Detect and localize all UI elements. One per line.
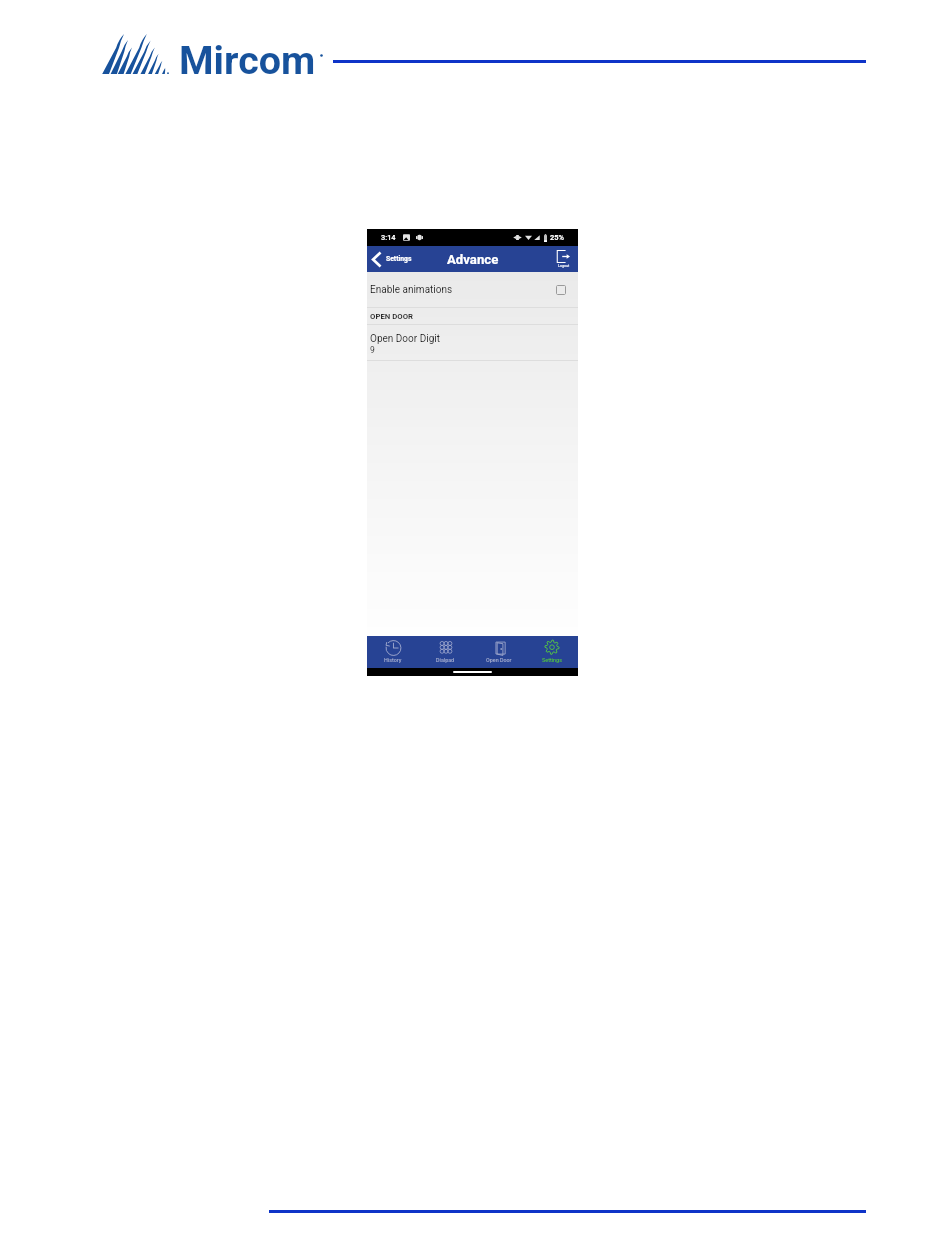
button[interactable]: Open Door Digit: [367, 325, 578, 360]
button[interactable]: Logout: [551, 246, 578, 272]
staticText: Settings: [386, 255, 412, 263]
staticText: Settings: [542, 657, 562, 663]
button[interactable]: History: [367, 636, 419, 668]
staticText: 3:14: [381, 233, 396, 242]
staticText: Mircom: [179, 37, 316, 81]
staticText: Advance: [447, 252, 499, 267]
button[interactable]: Dialpad: [419, 636, 472, 668]
staticText: 25%: [550, 233, 564, 242]
button[interactable]: Settings: [525, 636, 578, 668]
staticText: History: [384, 657, 402, 663]
button[interactable]: Open Door: [472, 636, 525, 668]
staticText: Enable animations: [370, 284, 453, 296]
staticText: OPEN DOOR: [370, 312, 414, 321]
staticText: Logout: [558, 264, 570, 268]
staticText: 9: [370, 345, 375, 355]
button[interactable]: Enable animations: [367, 272, 578, 307]
staticText: Open Door Digit: [370, 333, 440, 345]
button[interactable]: Settings: [367, 246, 418, 272]
staticText: Open Door: [486, 657, 512, 663]
staticText: Dialpad: [436, 657, 455, 663]
